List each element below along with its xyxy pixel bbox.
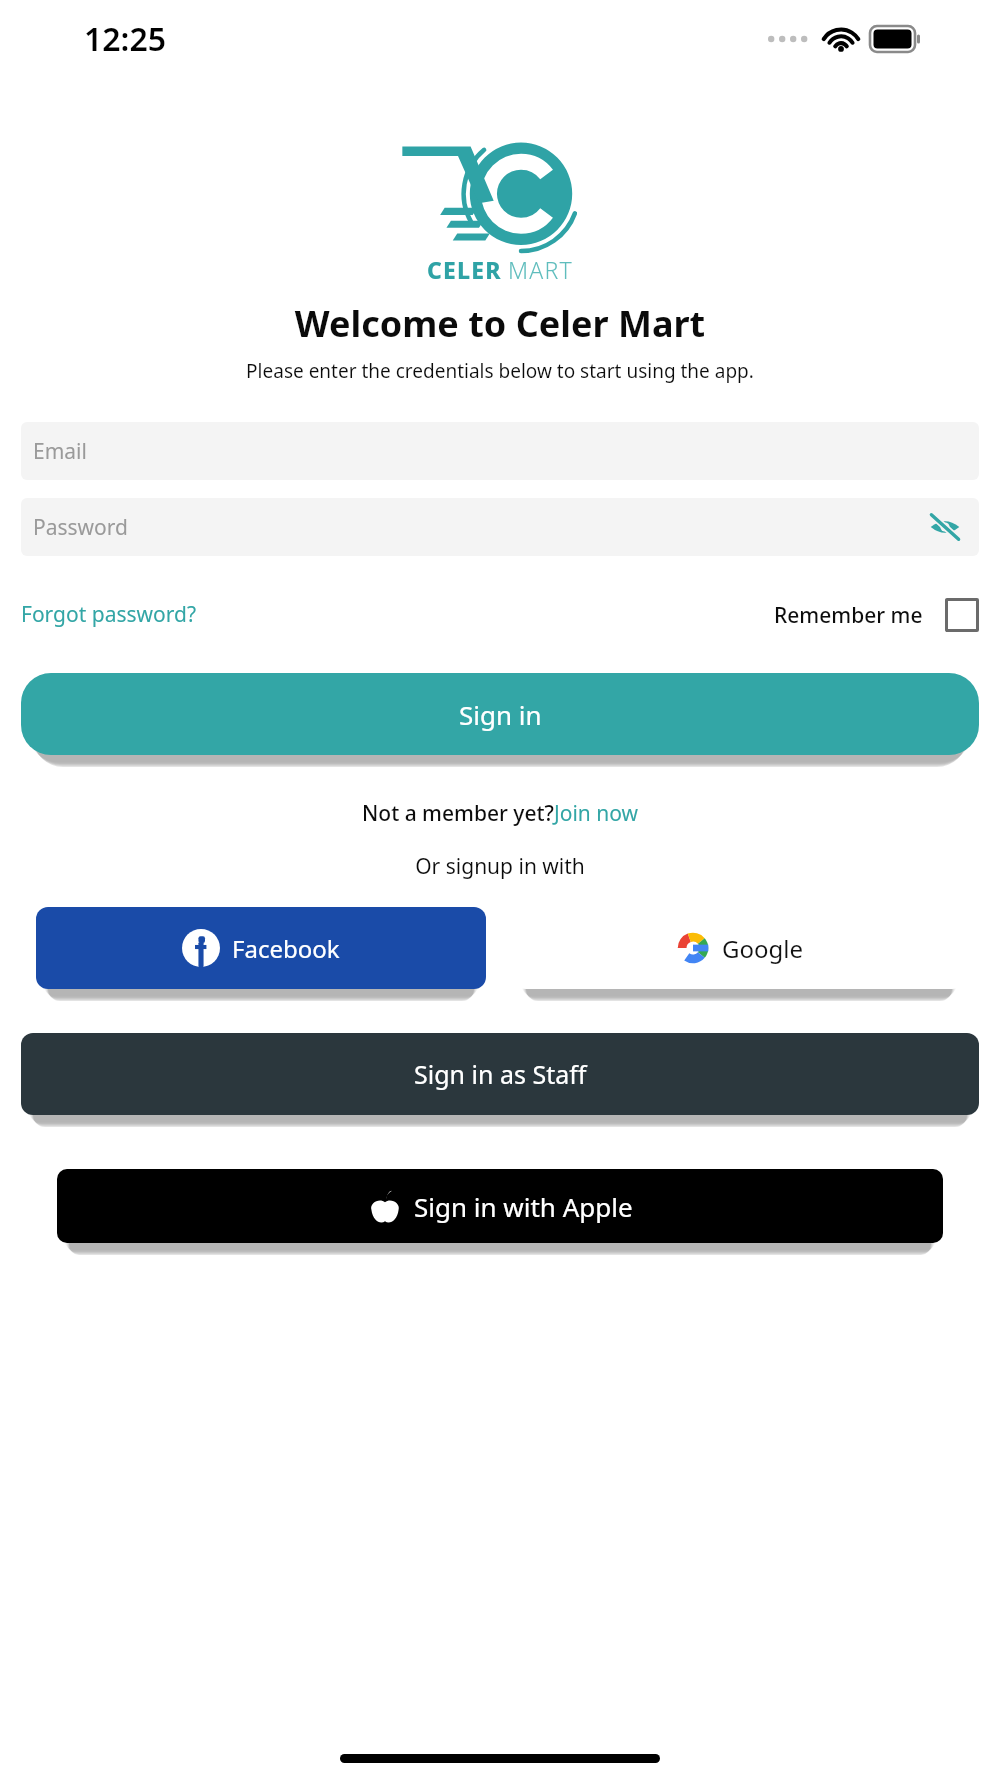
staticText: Not a member yet? xyxy=(362,799,554,828)
staticText: Sign in as Staff xyxy=(414,1057,587,1091)
staticText: Forgot password? xyxy=(21,600,197,629)
button[interactable]: Sign in as Staff xyxy=(21,1033,979,1115)
button[interactable]: Show password xyxy=(923,505,967,549)
staticText: Email xyxy=(33,437,87,466)
button[interactable]: Sign in xyxy=(21,673,979,755)
button[interactable]: Facebook xyxy=(36,907,486,989)
staticText: Facebook xyxy=(232,932,340,965)
staticText: Sign in with Apple xyxy=(414,1189,633,1224)
button[interactable]: Remember me xyxy=(774,598,979,632)
button[interactable]: Email xyxy=(21,422,979,480)
button[interactable]: Forgot password? xyxy=(21,594,197,635)
staticText: Password xyxy=(33,513,128,542)
staticText: Google xyxy=(722,932,803,965)
staticText: CELER xyxy=(427,254,502,285)
button[interactable]: Google xyxy=(514,907,964,989)
staticText: MART xyxy=(508,254,573,285)
staticText: Join now xyxy=(554,799,639,828)
staticText: 12:25 xyxy=(84,17,167,61)
staticText: Please enter the credentials below to st… xyxy=(20,358,980,384)
button[interactable]: Sign in with Apple xyxy=(57,1169,943,1243)
staticText: Or signup in with xyxy=(0,852,1000,881)
staticText: Remember me xyxy=(774,601,923,630)
staticText: Welcome to Celer Mart xyxy=(0,299,1000,348)
button[interactable]: Password xyxy=(21,498,979,556)
staticText: Sign in xyxy=(459,697,542,732)
button[interactable]: Join now xyxy=(554,799,639,828)
